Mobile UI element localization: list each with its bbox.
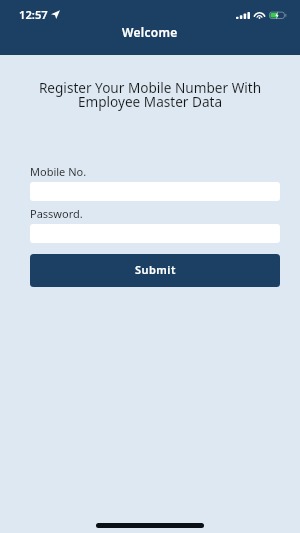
staticText: Register Your Mobile Number With Employe…	[14, 78, 286, 111]
staticText: Welcome	[122, 24, 178, 40]
button[interactable]: Submit	[30, 254, 280, 287]
staticText: Submit	[135, 262, 176, 277]
staticText: Password.	[30, 206, 83, 221]
staticText: Mobile No.	[30, 164, 87, 179]
staticText: 12:57	[19, 7, 48, 22]
